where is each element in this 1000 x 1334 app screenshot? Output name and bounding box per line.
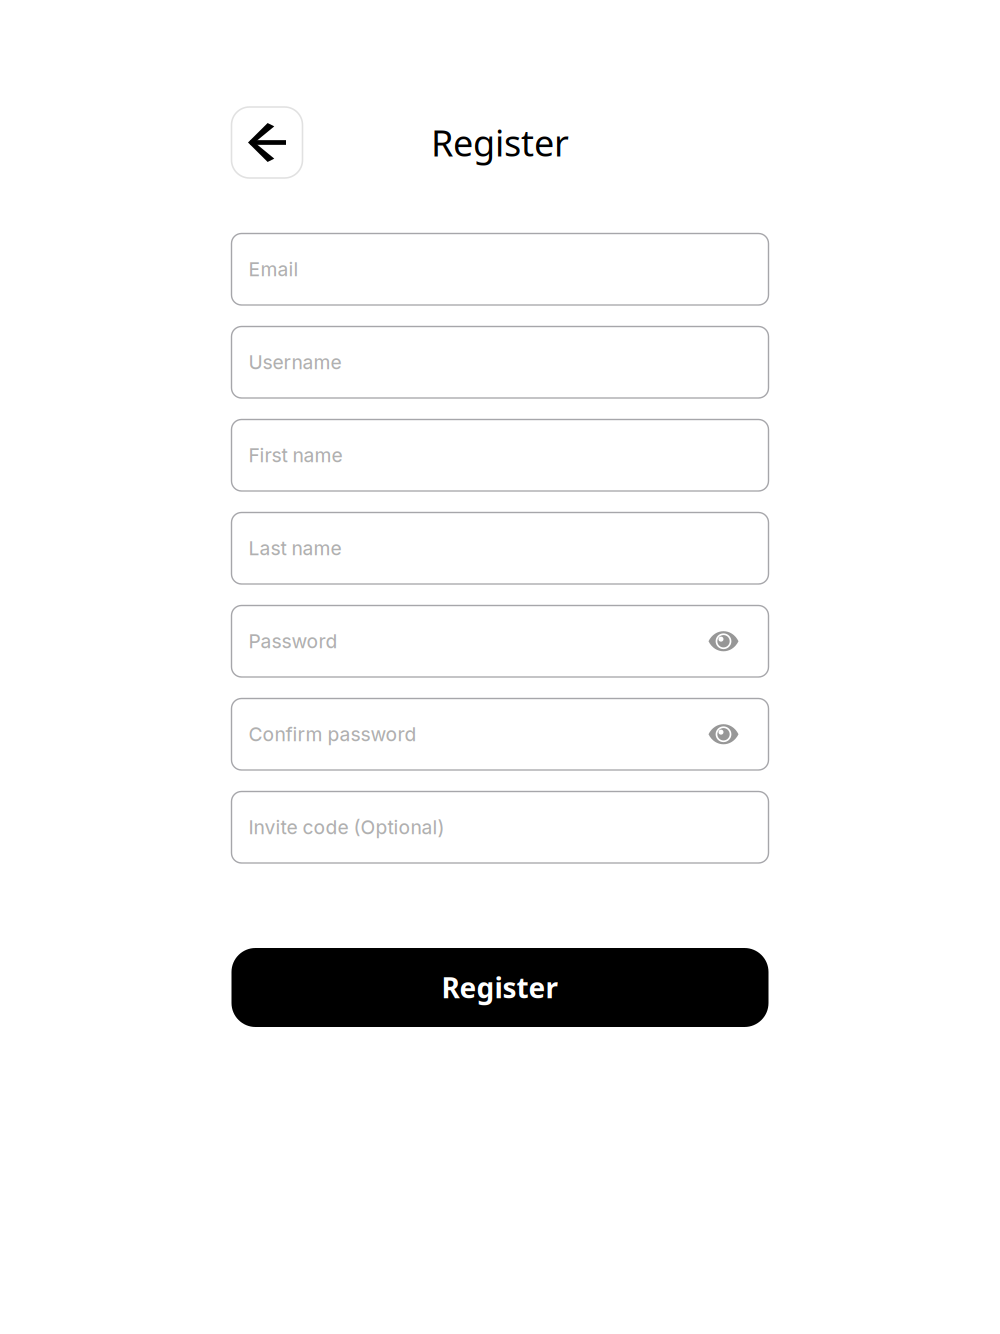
button[interactable]: Show Password bbox=[708, 631, 738, 651]
textField[interactable]: Confirm password bbox=[231, 698, 768, 770]
staticText: Last name bbox=[248, 537, 341, 560]
staticText: Register bbox=[431, 119, 569, 166]
button[interactable]: Show Confirm password bbox=[708, 724, 738, 744]
staticText: Email bbox=[248, 258, 298, 281]
staticText: Register bbox=[441, 969, 558, 1006]
textField[interactable]: Last name bbox=[231, 512, 768, 584]
staticText: First name bbox=[248, 444, 342, 467]
staticText: Username bbox=[248, 351, 341, 374]
textField[interactable]: Email bbox=[231, 233, 768, 305]
staticText: Invite code (Optional) bbox=[248, 816, 444, 839]
button[interactable]: Back bbox=[231, 107, 302, 178]
textField[interactable]: Username bbox=[231, 326, 768, 398]
textField[interactable]: Invite code (Optional) bbox=[231, 791, 768, 863]
textField[interactable]: Password bbox=[231, 605, 768, 677]
staticText: Confirm password bbox=[248, 723, 416, 746]
staticText: Password bbox=[248, 630, 337, 653]
textField[interactable]: First name bbox=[231, 419, 768, 491]
button[interactable]: Register bbox=[231, 948, 768, 1027]
